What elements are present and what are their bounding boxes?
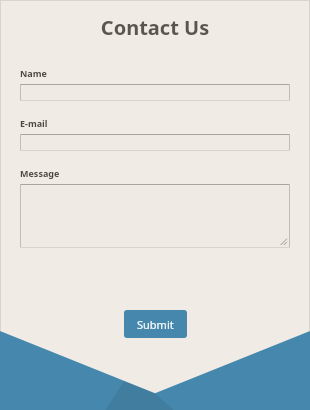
staticText: Contact Us bbox=[20, 14, 290, 41]
staticText: E-mail bbox=[20, 117, 48, 129]
staticText: Name bbox=[20, 67, 47, 79]
button[interactable] bbox=[20, 184, 290, 248]
button[interactable]: Submit bbox=[124, 310, 187, 338]
button[interactable] bbox=[20, 134, 290, 151]
staticText: Submit bbox=[137, 317, 174, 332]
button[interactable] bbox=[20, 84, 290, 101]
staticText: Message bbox=[20, 167, 60, 179]
